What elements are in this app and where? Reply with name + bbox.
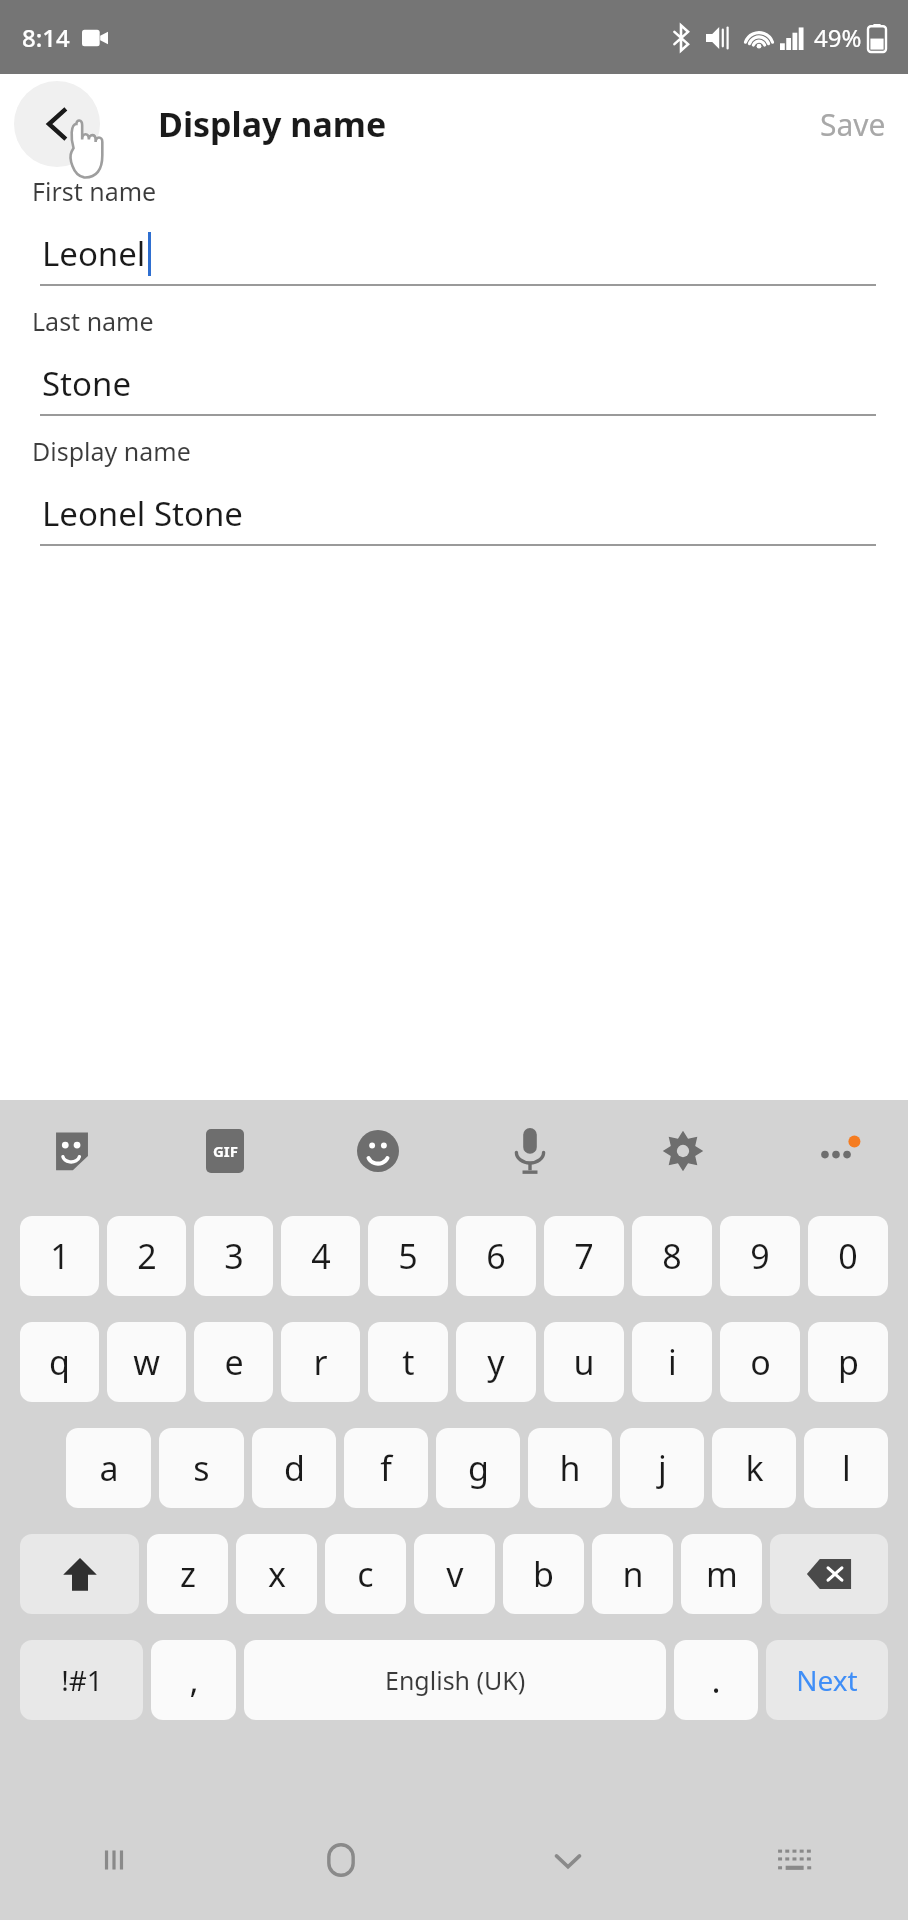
- staticText: g: [468, 1445, 489, 1491]
- staticText: j: [658, 1445, 667, 1491]
- button[interactable]: Keyboard settings: [647, 1115, 719, 1187]
- button[interactable]: l: [804, 1428, 888, 1508]
- button[interactable]: ,: [151, 1640, 236, 1720]
- button[interactable]: v: [414, 1534, 495, 1614]
- staticText: s: [193, 1445, 210, 1491]
- staticText: Last name: [32, 304, 154, 338]
- button[interactable]: Emoji: [342, 1115, 414, 1187]
- button[interactable]: Backspace: [770, 1534, 888, 1614]
- button[interactable]: d: [252, 1428, 336, 1508]
- staticText: n: [622, 1551, 644, 1597]
- staticText: t: [402, 1339, 415, 1385]
- staticText: 6: [486, 1233, 506, 1279]
- staticText: 1: [50, 1233, 70, 1279]
- button[interactable]: Recents: [0, 1800, 227, 1920]
- staticText: p: [838, 1339, 859, 1385]
- button[interactable]: w: [107, 1322, 186, 1402]
- button[interactable]: x: [236, 1534, 317, 1614]
- button[interactable]: u: [544, 1322, 624, 1402]
- button[interactable]: c: [325, 1534, 406, 1614]
- button[interactable]: o: [720, 1322, 800, 1402]
- button[interactable]: 8: [632, 1216, 712, 1296]
- button[interactable]: f: [344, 1428, 428, 1508]
- staticText: e: [224, 1339, 244, 1385]
- button[interactable]: 7: [544, 1216, 624, 1296]
- staticText: Stone: [42, 361, 132, 406]
- staticText: x: [268, 1551, 286, 1597]
- button[interactable]: English (UK): [244, 1640, 666, 1720]
- staticText: u: [573, 1339, 595, 1385]
- button[interactable]: k: [712, 1428, 796, 1508]
- button[interactable]: 5: [368, 1216, 448, 1296]
- staticText: English (UK): [385, 1663, 526, 1697]
- button[interactable]: g: [436, 1428, 520, 1508]
- button[interactable]: Leonel: [32, 226, 876, 280]
- button[interactable]: h: [528, 1428, 612, 1508]
- button[interactable]: z: [147, 1534, 228, 1614]
- button[interactable]: i: [632, 1322, 712, 1402]
- button[interactable]: Leonel Stone: [32, 486, 876, 540]
- button[interactable]: t: [368, 1322, 448, 1402]
- staticText: ,: [189, 1657, 199, 1703]
- button[interactable]: 0: [808, 1216, 888, 1296]
- staticText: Display name: [32, 434, 191, 468]
- button[interactable]: r: [281, 1322, 360, 1402]
- button[interactable]: 4: [281, 1216, 360, 1296]
- button[interactable]: Next: [766, 1640, 888, 1720]
- staticText: First name: [32, 174, 157, 208]
- staticText: 8:14: [22, 21, 70, 54]
- button[interactable]: Shift: [20, 1534, 139, 1614]
- staticText: Leonel Stone: [42, 491, 243, 536]
- staticText: a: [99, 1445, 119, 1491]
- button[interactable]: 6: [456, 1216, 536, 1296]
- button[interactable]: 9: [720, 1216, 800, 1296]
- button[interactable]: b: [503, 1534, 584, 1614]
- staticText: r: [313, 1339, 328, 1385]
- button[interactable]: p: [808, 1322, 888, 1402]
- staticText: l: [842, 1445, 851, 1491]
- staticText: 49%: [814, 21, 862, 54]
- staticText: .: [711, 1657, 721, 1703]
- staticText: o: [750, 1339, 771, 1385]
- staticText: 2: [137, 1233, 157, 1279]
- staticText: v: [446, 1551, 464, 1597]
- staticText: Save: [820, 104, 886, 145]
- staticText: q: [49, 1339, 70, 1385]
- staticText: Leonel: [42, 231, 146, 276]
- staticText: i: [668, 1339, 677, 1385]
- staticText: d: [284, 1445, 305, 1491]
- button[interactable]: .: [674, 1640, 758, 1720]
- staticText: h: [559, 1445, 581, 1491]
- button[interactable]: !#1: [20, 1640, 143, 1720]
- button[interactable]: Hide keyboard: [454, 1800, 681, 1920]
- staticText: z: [180, 1551, 196, 1597]
- button[interactable]: y: [456, 1322, 536, 1402]
- button[interactable]: Home: [227, 1800, 454, 1920]
- button[interactable]: n: [592, 1534, 673, 1614]
- staticText: Next: [796, 1661, 858, 1699]
- button[interactable]: j: [620, 1428, 704, 1508]
- button[interactable]: GIF: [189, 1115, 261, 1187]
- button[interactable]: Switch keyboard: [681, 1800, 908, 1920]
- staticText: 9: [750, 1233, 770, 1279]
- button[interactable]: More options: [800, 1115, 872, 1187]
- staticText: f: [380, 1445, 392, 1491]
- button[interactable]: Back: [14, 81, 100, 167]
- staticText: k: [745, 1445, 764, 1491]
- button[interactable]: s: [159, 1428, 244, 1508]
- staticText: w: [133, 1339, 160, 1385]
- button[interactable]: Stickers: [36, 1115, 108, 1187]
- staticText: c: [357, 1551, 374, 1597]
- button[interactable]: e: [194, 1322, 273, 1402]
- button[interactable]: Save: [820, 104, 886, 145]
- staticText: b: [533, 1551, 554, 1597]
- button[interactable]: Stone: [32, 356, 876, 410]
- button[interactable]: Voice input: [494, 1115, 566, 1187]
- staticText: 0: [838, 1233, 858, 1279]
- button[interactable]: 1: [20, 1216, 99, 1296]
- button[interactable]: m: [681, 1534, 762, 1614]
- button[interactable]: 2: [107, 1216, 186, 1296]
- button[interactable]: 3: [194, 1216, 273, 1296]
- button[interactable]: q: [20, 1322, 99, 1402]
- button[interactable]: a: [66, 1428, 151, 1508]
